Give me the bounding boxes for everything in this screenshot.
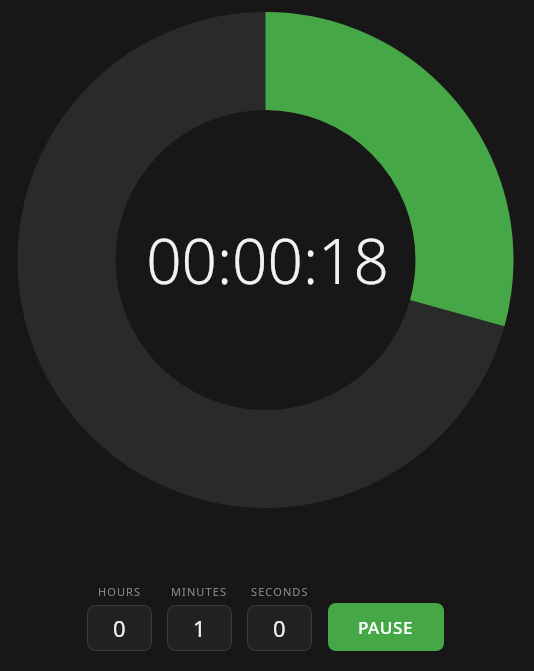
- staticText: 00:00:18: [146, 218, 389, 302]
- button[interactable]: PAUSE: [328, 603, 444, 651]
- staticText: 1: [193, 613, 206, 643]
- button[interactable]: SECONDS: [247, 605, 312, 651]
- staticText: SECONDS: [251, 584, 309, 599]
- button[interactable]: HOURS: [87, 605, 152, 651]
- button[interactable]: MINUTES: [167, 605, 232, 651]
- staticText: 0: [113, 613, 126, 643]
- staticText: MINUTES: [171, 584, 228, 599]
- staticText: 0: [273, 613, 286, 643]
- staticText: HOURS: [98, 584, 142, 599]
- staticText: PAUSE: [358, 616, 414, 639]
